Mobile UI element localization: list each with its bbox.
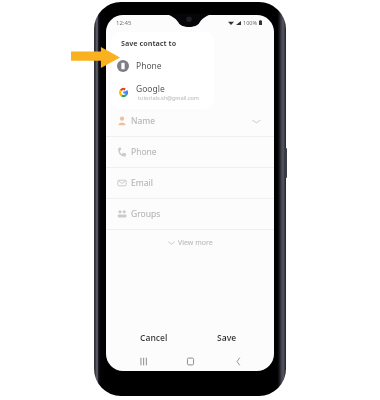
button[interactable]: Google — [111, 80, 214, 104]
staticText: Email — [131, 177, 153, 189]
staticText: 100% — [243, 19, 258, 26]
staticText: Google — [136, 83, 165, 95]
button[interactable]: Phone — [106, 137, 274, 167]
button[interactable]: Home — [178, 349, 202, 371]
button[interactable]: Email — [106, 168, 274, 198]
staticText: Groups — [131, 208, 161, 220]
staticText: Save contact to — [121, 38, 177, 48]
staticText: Phone — [136, 60, 162, 72]
button[interactable]: Groups — [106, 199, 274, 229]
staticText: 12:45 — [116, 19, 132, 27]
staticText: tutorials.sh@gmail.com — [138, 94, 200, 101]
button[interactable]: Phone — [111, 55, 214, 77]
button[interactable]: Back — [226, 349, 250, 371]
button[interactable]: Name — [106, 106, 274, 136]
button[interactable]: Cancel — [138, 327, 170, 348]
other: Pointer — [71, 47, 120, 68]
staticText: Save — [217, 332, 237, 344]
button[interactable]: Recent apps — [131, 349, 155, 371]
staticText: Cancel — [140, 332, 168, 344]
staticText: Phone — [131, 146, 157, 158]
button[interactable]: Save — [212, 327, 242, 348]
button[interactable]: View more — [168, 238, 213, 248]
staticText: Name — [131, 115, 155, 127]
staticText: View more — [178, 238, 213, 248]
